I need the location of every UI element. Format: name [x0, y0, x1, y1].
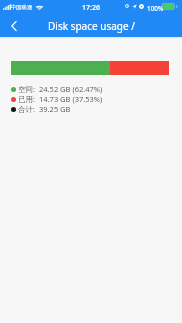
staticText: 空间: — [18, 84, 36, 94]
staticText: 合计: — [18, 104, 36, 114]
staticText: 39.25 GB — [39, 104, 71, 114]
staticText: 17:26 — [82, 3, 100, 13]
staticText: 中国联通 — [11, 4, 33, 11]
button[interactable]: Back — [0, 14, 28, 37]
staticText: 14.73 GB (37.53%) — [39, 94, 103, 104]
staticText: Disk space usage / — [48, 19, 135, 33]
staticText: 24.52 GB (62.47%) — [39, 84, 103, 94]
staticText: 100% — [147, 4, 164, 13]
staticText: 已用: — [18, 94, 36, 104]
